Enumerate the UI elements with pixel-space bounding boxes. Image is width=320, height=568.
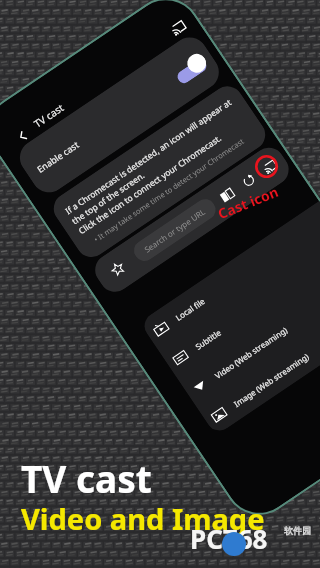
button[interactable]: Subtitle xyxy=(159,230,320,379)
button[interactable]: Enable cast xyxy=(13,30,226,199)
staticText: Video and Image xyxy=(21,499,265,538)
button[interactable]: Back xyxy=(8,122,36,150)
staticText: If a Chromecast is detected, an icon wil… xyxy=(63,96,247,237)
button[interactable]: Cast xyxy=(167,17,189,39)
button[interactable]: Bookmarks xyxy=(216,184,238,206)
staticText: TV cast xyxy=(31,100,66,131)
button[interactable]: Cast xyxy=(258,156,281,178)
staticText: TV cast xyxy=(21,453,152,503)
button[interactable]: Video (Web streaming) xyxy=(178,259,320,408)
staticText: Enable cast xyxy=(34,138,81,175)
button[interactable]: Bookmark xyxy=(105,257,130,282)
staticText: • It may take some time to detect your C… xyxy=(92,136,246,244)
staticText: Video (Web streaming) xyxy=(212,324,290,381)
staticText: 软件园 xyxy=(284,525,311,536)
staticText: Local file xyxy=(173,295,207,323)
button[interactable]: Enable cast toggle xyxy=(167,48,212,87)
staticText: Cast icon xyxy=(215,182,281,223)
staticText: Subtitle xyxy=(193,326,223,352)
button[interactable]: Refresh xyxy=(238,170,260,192)
staticText: Image (Web streaming) xyxy=(231,350,311,409)
staticText: Search or type URL xyxy=(142,205,208,255)
staticText: PC768 xyxy=(190,521,268,556)
button[interactable]: Local file xyxy=(139,201,320,350)
button[interactable]: Search or type URL xyxy=(130,195,220,265)
button[interactable]: Image (Web streaming) xyxy=(197,287,320,436)
